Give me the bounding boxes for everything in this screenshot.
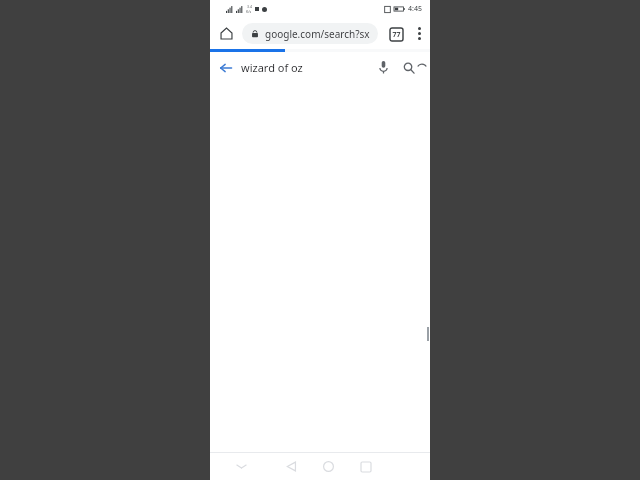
staticText: google.com/search?sx [265,27,370,41]
button[interactable]: wizard of oz [241,60,370,75]
button[interactable]: Home [310,453,347,480]
button[interactable]: Switch tabs [384,22,408,46]
staticText: 3.4 [247,4,252,9]
button[interactable]: More options [408,18,430,49]
button[interactable]: Recent apps [347,453,384,480]
button[interactable]: google.com/search?sx [242,23,378,44]
button[interactable]: Back [272,453,310,480]
staticText: K/s [246,9,252,14]
staticText: 4:45 [408,4,422,14]
button[interactable]: Lens [422,52,430,83]
button[interactable]: Home [210,18,242,49]
button[interactable]: Search [396,52,422,83]
staticText: 77 [392,30,401,40]
button[interactable]: Voice search [370,52,396,83]
button[interactable]: Back [210,52,241,83]
